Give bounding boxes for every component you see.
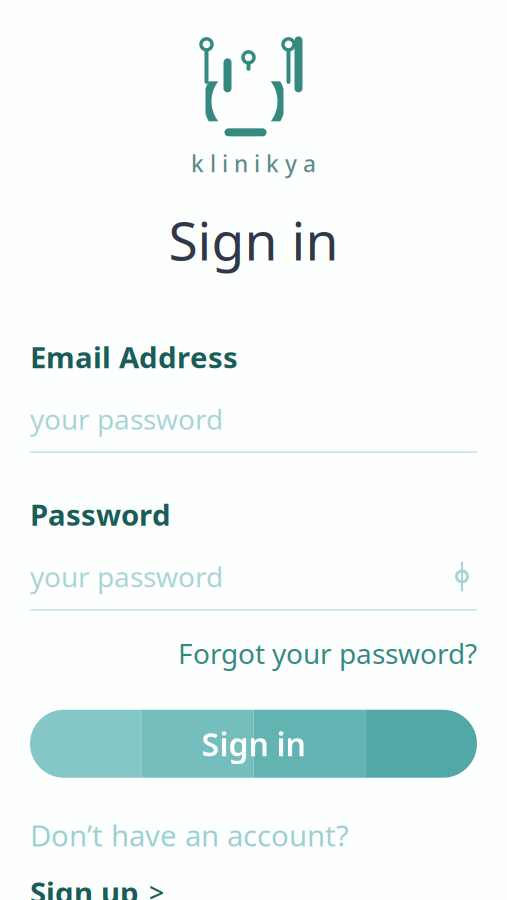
staticText: Forgot your password? [178,635,477,672]
staticText: > [149,874,164,900]
button[interactable]: Forgot your password? [178,635,477,672]
button[interactable]: Sign in [30,710,477,778]
staticText: your password [30,558,223,595]
staticText: your password [30,400,223,437]
staticText: Don’t have an account? [30,816,349,855]
staticText: Email Address [30,337,238,376]
button[interactable]: Show password [447,561,477,591]
staticText: Sign in [201,722,305,765]
staticText: Sign in [168,204,338,275]
staticText: Password [30,495,171,534]
staticText: k l i n i k y a [191,148,316,178]
button[interactable]: Sign up [30,873,164,900]
staticText: Sign up [30,873,139,900]
